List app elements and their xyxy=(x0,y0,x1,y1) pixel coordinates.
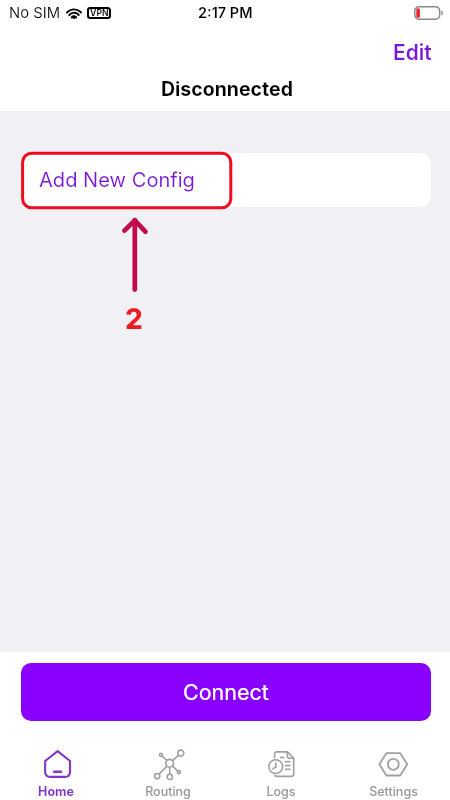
other: Wi-Fi signal xyxy=(65,7,83,19)
button[interactable]: Home xyxy=(0,738,112,800)
staticText: 2:17 PM xyxy=(198,4,253,22)
button[interactable]: Routing xyxy=(112,738,224,800)
staticText: Connect xyxy=(183,679,269,705)
button[interactable]: Connect xyxy=(21,663,431,721)
button[interactable]: Edit xyxy=(384,36,441,69)
button[interactable]: Logs xyxy=(224,738,337,800)
staticText: Add New Config xyxy=(39,168,195,192)
staticText: No SIM xyxy=(9,4,61,22)
staticText: Routing xyxy=(145,784,191,799)
staticText: Home xyxy=(38,784,74,799)
staticText: Settings xyxy=(369,784,418,799)
staticText: 2 xyxy=(125,302,143,336)
staticText: VPN xyxy=(90,8,109,18)
staticText: Edit xyxy=(393,40,432,65)
staticText: Disconnected xyxy=(161,77,293,101)
staticText: Logs xyxy=(266,784,296,799)
button[interactable]: Add New Config xyxy=(21,153,431,207)
button[interactable]: Settings xyxy=(337,738,450,800)
other: Battery low xyxy=(414,6,443,20)
